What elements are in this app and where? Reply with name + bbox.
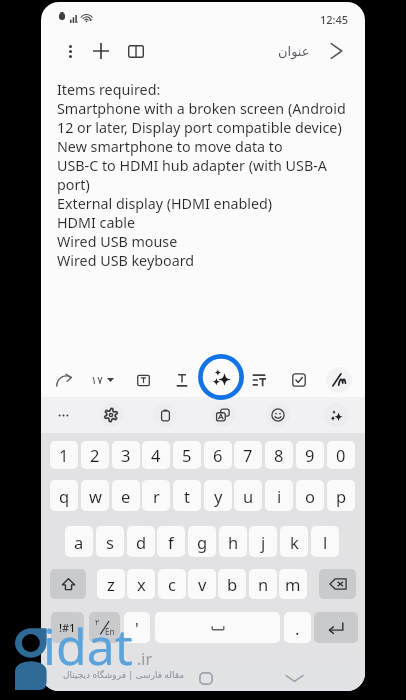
button[interactable]: عنوان	[272, 32, 316, 70]
staticText: w	[89, 485, 102, 507]
staticText: p	[336, 485, 347, 507]
staticText: Items required:	[57, 80, 161, 99]
button[interactable]: Shift	[50, 569, 86, 599]
staticText: Wired USB keyboard	[57, 251, 195, 270]
button[interactable]: Clipboard	[153, 403, 177, 427]
button[interactable]: Home	[192, 664, 220, 691]
button[interactable]: Paragraph	[246, 367, 272, 393]
staticText: '	[135, 617, 139, 639]
staticText: 9	[305, 444, 315, 466]
button[interactable]: e	[112, 480, 140, 511]
button[interactable]: w	[81, 480, 109, 511]
button[interactable]: l	[311, 526, 339, 557]
staticText: v	[198, 573, 207, 595]
staticText: z	[107, 573, 115, 595]
button[interactable]: Change language	[89, 612, 120, 643]
button[interactable]: 6	[204, 441, 232, 469]
staticText: عنوان	[278, 44, 310, 59]
button[interactable]: Font size	[91, 367, 117, 393]
button[interactable]: 3	[112, 441, 140, 469]
button[interactable]: f	[157, 526, 185, 557]
staticText: u	[243, 485, 254, 507]
button[interactable]: Page view	[123, 32, 149, 70]
staticText: y	[214, 485, 223, 507]
staticText: d	[136, 531, 147, 553]
staticText: External display (HDMI enabled)	[57, 194, 273, 213]
button[interactable]: 1	[50, 441, 78, 469]
button[interactable]: More options	[57, 32, 83, 70]
button[interactable]: Checklist	[286, 367, 312, 393]
staticText: j	[261, 531, 266, 553]
staticText: .ir	[137, 648, 153, 670]
button[interactable]: c	[158, 569, 186, 599]
button[interactable]: Backspace	[319, 569, 356, 599]
button[interactable]: Underline	[169, 367, 195, 393]
button[interactable]: '	[124, 612, 150, 643]
button[interactable]: 9	[296, 441, 324, 469]
button[interactable]: More	[51, 403, 75, 427]
staticText: Smartphone with a broken screen (Android	[57, 99, 346, 118]
staticText: 4	[151, 444, 161, 466]
button[interactable]: Handwriting	[326, 367, 352, 393]
staticText: o	[305, 485, 315, 507]
button[interactable]: 4	[142, 441, 170, 469]
staticText: New smartphone to move data to	[57, 137, 283, 156]
staticText: i	[277, 485, 282, 507]
button[interactable]: AI suggestions	[324, 403, 348, 427]
staticText: ۱۷	[91, 374, 103, 387]
staticText: a	[74, 531, 84, 553]
staticText: HDMI cable	[57, 213, 135, 232]
button[interactable]: Settings	[99, 403, 123, 427]
button[interactable]: y	[204, 480, 232, 511]
button[interactable]: h	[219, 526, 247, 557]
button[interactable]: Redo	[51, 367, 77, 393]
staticText: 12 or later, Display port compatible dev…	[57, 118, 342, 137]
button[interactable]: x	[127, 569, 155, 599]
button[interactable]: a	[65, 526, 93, 557]
button[interactable]: z	[97, 569, 125, 599]
button[interactable]: Enter	[314, 612, 358, 643]
button[interactable]: j	[249, 526, 277, 557]
button[interactable]: Translate	[211, 403, 235, 427]
staticText: g	[197, 531, 208, 553]
button[interactable]: d	[127, 526, 155, 557]
button[interactable]: m	[279, 569, 307, 599]
staticText: port)	[57, 175, 90, 194]
button[interactable]: Add	[88, 32, 114, 70]
button[interactable]: AI assist	[198, 354, 244, 400]
button[interactable]: !#1	[51, 612, 84, 643]
staticText: مقاله فارسی | فروشگاه دیجیتال	[63, 668, 185, 680]
button[interactable]: Text box	[130, 367, 156, 393]
button[interactable]: .	[284, 612, 311, 643]
button[interactable]: b	[218, 569, 246, 599]
button[interactable]: n	[249, 569, 277, 599]
staticText: t	[184, 485, 190, 507]
button[interactable]: Hide keyboard	[280, 664, 308, 691]
staticText: 7	[243, 444, 253, 466]
button[interactable]: i	[265, 480, 293, 511]
staticText: n	[258, 573, 269, 595]
staticText: 1	[59, 444, 69, 466]
button[interactable]: o	[296, 480, 324, 511]
button[interactable]: 0	[327, 441, 355, 469]
button[interactable]: g	[188, 526, 216, 557]
staticText: e	[121, 485, 131, 507]
button[interactable]: p	[327, 480, 355, 511]
button[interactable]: Space	[155, 612, 280, 643]
button[interactable]: k	[280, 526, 308, 557]
button[interactable]: 2	[81, 441, 109, 469]
button[interactable]: Next	[323, 32, 349, 70]
button[interactable]: 5	[173, 441, 201, 469]
staticText: .	[295, 617, 300, 639]
button[interactable]: v	[188, 569, 216, 599]
staticText: l	[323, 531, 328, 553]
staticText: h	[228, 531, 239, 553]
button[interactable]: r	[142, 480, 170, 511]
button[interactable]: s	[96, 526, 124, 557]
button[interactable]: 7	[234, 441, 262, 469]
button[interactable]: Emoji	[266, 403, 290, 427]
button[interactable]: t	[173, 480, 201, 511]
button[interactable]: 8	[265, 441, 293, 469]
button[interactable]: q	[50, 480, 78, 511]
button[interactable]: u	[234, 480, 262, 511]
